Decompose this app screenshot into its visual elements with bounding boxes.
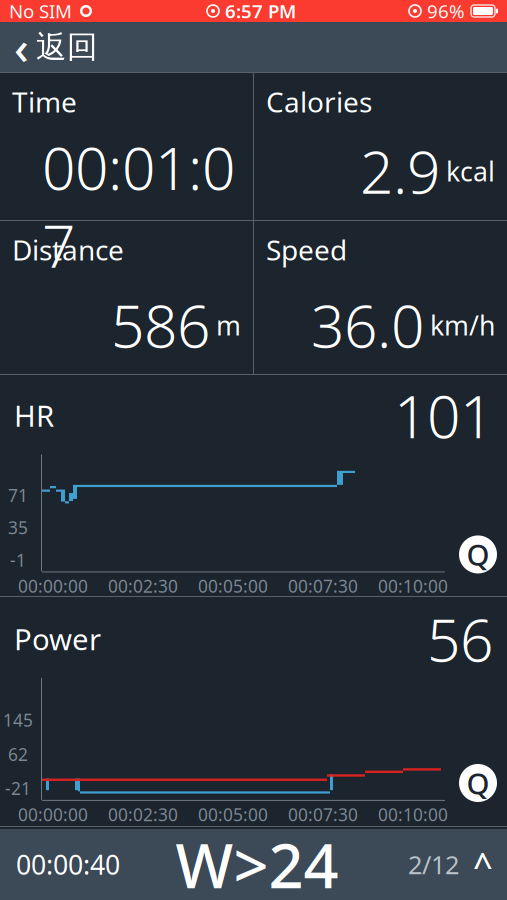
staticText: No SIM [9,0,72,23]
staticText: 00:05:00 [198,574,268,597]
staticText: 71 [8,484,28,507]
staticText: W>24 [175,824,338,900]
button[interactable]: ‹ [0,11,112,83]
button[interactable]: Zoom chart [459,535,497,573]
staticText: 00:00:00 [18,574,88,597]
staticText: Speed [266,231,347,268]
staticText: 35 [8,516,28,539]
staticText: 00:10:00 [378,574,448,597]
staticText: Distance [12,231,124,268]
staticText: 00:00:40 [16,847,120,882]
staticText: 00:02:30 [108,803,178,826]
staticText: ‹ [14,17,29,77]
staticText: Time [12,83,77,120]
staticText: m [216,307,241,343]
staticText: 96% [427,0,465,23]
staticText: 00:00:00 [18,803,88,826]
staticText: Q [466,535,489,574]
staticText: Calories [266,83,372,120]
staticText: 00:10:00 [378,803,448,826]
staticText: 101 [394,376,493,454]
staticText: ^ [473,841,493,887]
staticText: 62 [8,743,28,766]
staticText: 2/12 [408,848,459,881]
staticText: 00:05:00 [198,803,268,826]
staticText: -1 [10,548,26,571]
staticText: 00:07:30 [288,803,358,826]
staticText: 2.9 [360,132,440,210]
staticText: kcal [446,153,495,189]
staticText: km/h [430,307,495,343]
staticText: -21 [5,777,31,800]
staticText: HR [14,396,54,435]
button[interactable]: Expand intervals [394,829,507,899]
staticText: Q [466,763,489,802]
staticText: 00:01:07 [42,128,235,284]
staticText: 返回 [36,28,98,66]
staticText: 6:57 PM [225,0,296,23]
staticText: 145 [3,708,33,731]
staticText: 00:02:30 [108,574,178,597]
staticText: 00:07:30 [288,574,358,597]
staticText: 56 [427,600,493,678]
staticText: 36.0 [311,286,424,364]
staticText: Power [14,619,101,658]
staticText: 586 [111,286,210,364]
button[interactable]: Zoom chart [459,764,497,802]
